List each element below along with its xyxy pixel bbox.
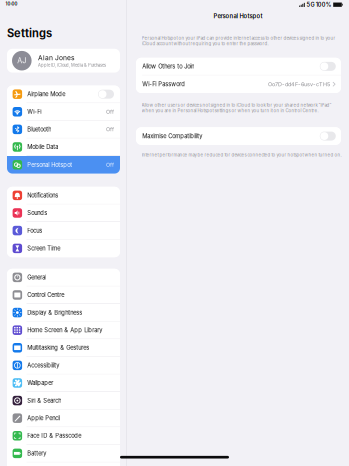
staticText: 100%	[316, 1, 332, 8]
staticText: Off	[106, 161, 114, 168]
staticText: AJ	[17, 56, 26, 65]
staticText: Settings	[7, 27, 52, 40]
staticText: Oo7D-dd4F-6usv-cTH5	[268, 81, 330, 87]
button[interactable]: Personal Hotspot	[7, 156, 120, 174]
staticText: Siri & Search	[27, 397, 61, 404]
staticText: Bluetooth	[27, 126, 51, 133]
button[interactable]: Control Centre	[7, 286, 120, 304]
staticText: Control Centre	[27, 291, 64, 298]
staticText: Off	[106, 108, 114, 115]
staticText: Personal Hotspot	[27, 161, 72, 168]
button[interactable]: Multitasking & Gestures	[7, 339, 120, 357]
button[interactable]: Accessibility	[7, 357, 120, 374]
button[interactable]: Notifications	[7, 187, 120, 204]
staticText: Allow Others to Join	[142, 63, 194, 70]
button[interactable]: Mobile Data	[7, 138, 120, 156]
staticText: Internet performance may be reduced for …	[141, 152, 341, 158]
button[interactable]: Apple Pencil	[7, 410, 120, 427]
staticText: 10:00	[6, 1, 18, 7]
staticText: Personal Hotspot	[213, 12, 262, 20]
staticText: Screen Time	[27, 245, 60, 252]
button[interactable]: Display & Brightness	[7, 304, 120, 322]
staticText: Off	[106, 126, 114, 133]
button[interactable]: Wallpaper	[7, 374, 120, 392]
staticText: Face ID & Passcode	[27, 432, 81, 439]
staticText: Alan Jones	[38, 54, 75, 62]
staticText: Maximise Compatibility	[142, 133, 202, 139]
staticText: Personal Hotspot on your iPad can provid…	[141, 35, 335, 46]
button[interactable]: Wi-Fi Password	[136, 75, 341, 93]
button[interactable]: Airplane Mode	[7, 86, 120, 103]
staticText: Battery	[27, 450, 46, 457]
staticText: Allow other users or devices not signed …	[141, 102, 331, 113]
button[interactable]: AJ	[7, 49, 120, 73]
staticText: Multitasking & Gestures	[27, 344, 89, 351]
button[interactable]: Screen Time	[7, 240, 120, 257]
button[interactable]: Battery	[7, 445, 120, 462]
staticText: Wi-Fi Password	[142, 81, 185, 88]
staticText: Airplane Mode	[27, 91, 65, 98]
button[interactable]: Maximise Compatibility	[136, 127, 341, 145]
staticText: Apple ID, iCloud, Media & Purchases	[38, 63, 106, 68]
staticText: Mobile Data	[27, 143, 58, 150]
button[interactable]: Wi-Fi	[7, 103, 120, 121]
staticText: Focus	[27, 227, 42, 234]
staticText: Notifications	[27, 192, 58, 199]
staticText: Wi-Fi	[27, 108, 41, 115]
button[interactable]: Bluetooth	[7, 121, 120, 138]
staticText: General	[27, 274, 46, 281]
button[interactable]: Siri & Search	[7, 392, 120, 410]
button[interactable]: General	[7, 269, 120, 286]
staticText: Sounds	[27, 209, 47, 216]
staticText: 5G	[306, 1, 314, 8]
button[interactable]: Home Screen & App Library	[7, 322, 120, 339]
staticText: Wallpaper	[27, 379, 53, 386]
staticText: Display & Brightness	[27, 309, 82, 316]
staticText: Accessibility	[27, 362, 59, 369]
button[interactable]: Allow Others to Join	[136, 58, 341, 75]
button[interactable]: Face ID & Passcode	[7, 427, 120, 445]
staticText: Home Screen & App Library	[27, 327, 102, 334]
staticText: Apple Pencil	[27, 415, 60, 422]
button[interactable]: Sounds	[7, 204, 120, 222]
button[interactable]: Focus	[7, 222, 120, 240]
